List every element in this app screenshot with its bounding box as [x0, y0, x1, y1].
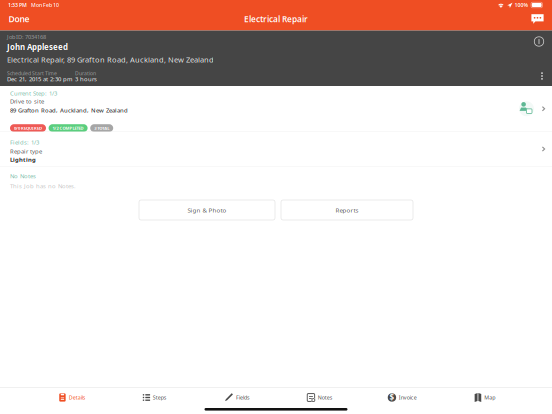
staticText: Notes — [318, 394, 333, 401]
button[interactable]: Details — [31, 388, 113, 407]
staticText: John Appleseed — [7, 42, 68, 52]
button[interactable]: Reports — [281, 200, 413, 220]
staticText: Current Step: 1/3 — [10, 89, 57, 97]
staticText: $ — [389, 392, 394, 403]
staticText: Done — [8, 13, 29, 25]
staticText: Details — [69, 394, 86, 401]
staticText: Job ID: 7034168 — [7, 33, 46, 40]
staticText: Mon Feb 10 — [31, 1, 59, 9]
staticText: Repair type — [10, 147, 42, 155]
button[interactable]: Fields: 1/3 — [0, 132, 552, 166]
staticText: No Notes — [10, 172, 36, 180]
staticText: Scheduled Start Time — [7, 70, 57, 77]
button[interactable]: Sign & Photo — [139, 200, 275, 220]
button[interactable]: Messages — [523, 10, 552, 28]
staticText: Drive to site — [10, 97, 44, 105]
staticText: Fields: 1/3 — [10, 138, 39, 146]
staticText: Map — [484, 394, 495, 401]
staticText: 89 Grafton Road, Auckland, New Zealand — [10, 106, 128, 114]
staticText: 0/0 REQUIRED — [14, 125, 42, 131]
button[interactable]: Map — [443, 388, 526, 407]
button[interactable]: $ — [361, 388, 443, 407]
staticText: Electrical Repair, 89 Grafton Road, Auck… — [7, 55, 214, 65]
button[interactable]: Steps — [113, 388, 196, 407]
button[interactable]: More options — [536, 67, 548, 85]
button[interactable]: Info — [530, 32, 548, 50]
staticText: Electrical Repair — [244, 13, 308, 25]
staticText: Fields — [236, 394, 250, 401]
staticText: 1/2 COMPLETED — [53, 125, 84, 131]
staticText: 3 hours — [75, 75, 97, 83]
staticText: Invoice — [399, 394, 417, 401]
button[interactable]: Fields — [196, 388, 278, 407]
staticText: This Job has no Notes. — [10, 182, 76, 190]
staticText: 1:33 PM — [8, 1, 27, 9]
staticText: Steps — [153, 394, 167, 401]
staticText: Dec 21, 2015 at 2:30 pm — [7, 75, 72, 83]
staticText: Duration — [75, 70, 96, 77]
staticText: Lighting — [10, 156, 36, 164]
staticText: Reports — [335, 206, 358, 214]
button[interactable]: Notes — [278, 388, 361, 407]
staticText: Sign & Photo — [187, 206, 226, 214]
button[interactable]: Done — [0, 10, 38, 28]
staticText: 100% — [514, 1, 528, 9]
staticText: 3 TOTAL — [94, 125, 109, 131]
button[interactable]: Current Step: 1/3 — [0, 86, 552, 131]
